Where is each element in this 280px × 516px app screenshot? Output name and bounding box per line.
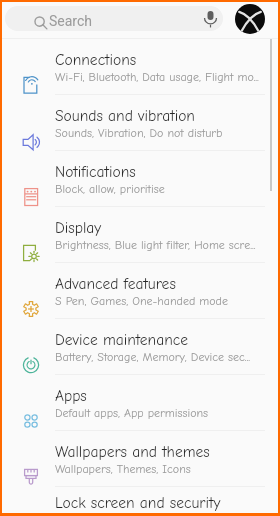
button[interactable]: Notifications [0,150,280,206]
staticText: Default apps, App permissions [55,406,209,420]
staticText: Lock screen and security [55,494,221,512]
staticText: Brightness, Blue light filter, Home scre… [55,238,256,252]
staticText: Apps [55,387,87,405]
staticText: Wi-Fi, Bluetooth, Data usage, Flight mo.… [55,70,259,84]
staticText: Wallpapers and themes [55,443,210,461]
button[interactable]: Account [235,4,265,34]
staticText: Notifications [55,163,136,181]
button[interactable]: Device maintenance [0,318,280,374]
staticText: Advanced features [55,275,176,293]
button[interactable]: Wallpapers and themes [0,430,280,486]
staticText: Search [49,13,93,29]
staticText: Sounds, Vibration, Do not disturb [55,126,223,140]
button[interactable]: Apps [0,374,280,430]
staticText: Battery, Storage, Memory, Device sec... [55,350,251,364]
staticText: Wallpapers, Themes, Icons [55,462,191,476]
button[interactable]: Connections [0,38,280,94]
staticText: Block, allow, prioritise [55,182,165,196]
button[interactable]: Advanced features [0,262,280,318]
button[interactable]: Display [0,206,280,262]
button[interactable]: Voice search [204,10,217,28]
staticText: Connections [55,51,137,69]
button[interactable] [5,6,223,31]
staticText: S Pen, Games, One-handed mode [55,294,228,308]
staticText: Device maintenance [55,331,188,349]
button[interactable]: Lock screen and security [0,486,280,516]
staticText: Sounds and vibration [55,107,195,125]
button[interactable]: Sounds and vibration [0,94,280,150]
staticText: Display [55,219,102,237]
